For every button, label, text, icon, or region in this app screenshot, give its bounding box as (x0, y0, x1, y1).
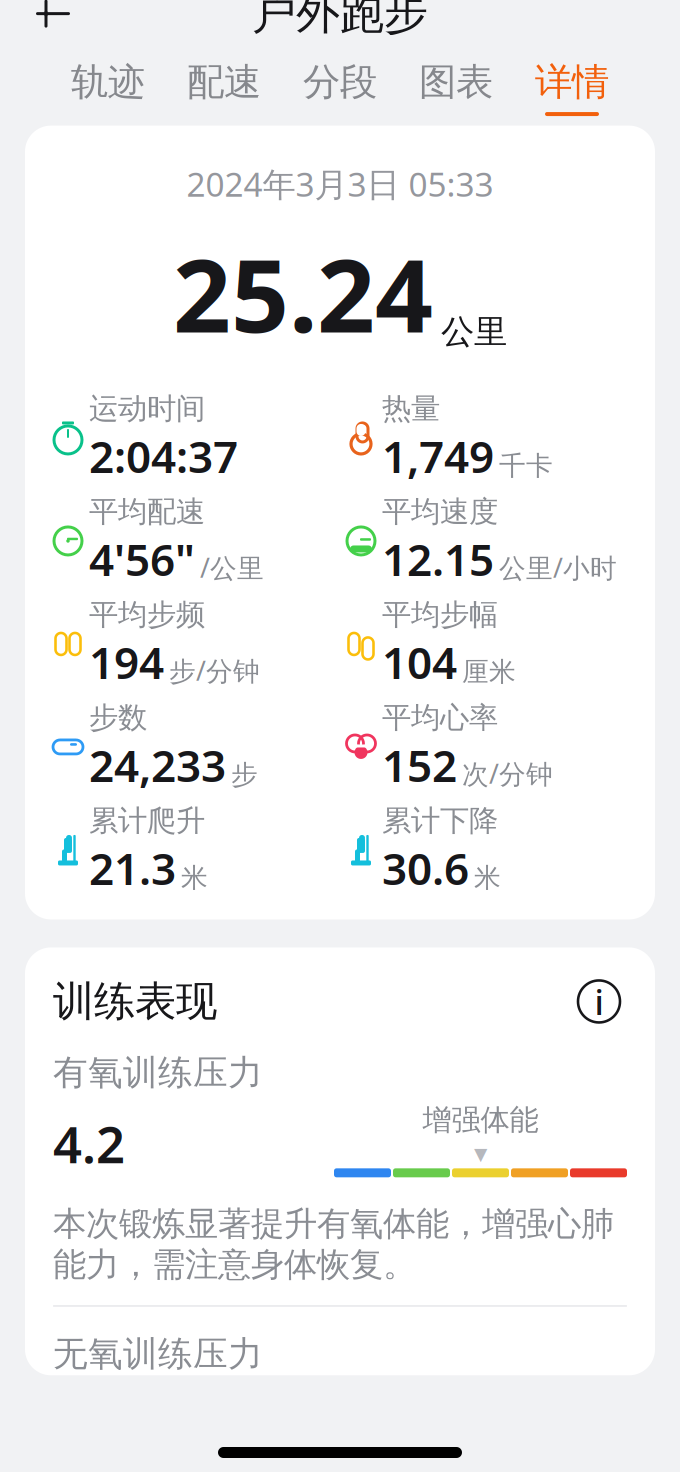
button[interactable]: 配速 (166, 53, 282, 123)
staticText: 运动时间 (89, 391, 205, 427)
button[interactable]: Info (571, 973, 627, 1029)
staticText: 累计下降 (382, 803, 498, 839)
staticText: 30.6 (382, 839, 469, 897)
staticText: 米 (181, 861, 208, 894)
staticText: 无氧训练压力 (53, 1333, 263, 1375)
staticText: 12.15 (382, 530, 494, 588)
staticText: 有氧训练压力 (53, 1051, 263, 1094)
staticText: 1,749 (382, 427, 494, 485)
staticText: 4.2 (53, 1110, 125, 1177)
staticText: 平均步幅 (382, 597, 498, 633)
staticText: 24,233 (89, 736, 226, 794)
staticText: 25.24 (173, 226, 433, 360)
staticText: ▾ (474, 1138, 487, 1168)
staticText: 公里 (441, 311, 507, 352)
staticText: 千卡 (499, 449, 553, 482)
button[interactable]: Back (20, 0, 86, 47)
staticText: 平均步频 (89, 597, 205, 633)
staticText: /公里 (200, 550, 264, 585)
button[interactable]: 轨迹 (50, 53, 166, 123)
staticText: 152 (382, 736, 457, 794)
button[interactable]: 详情 (514, 53, 630, 123)
staticText: 194 (89, 633, 164, 691)
staticText: 4'56" (89, 530, 195, 588)
staticText: 公里/小时 (499, 550, 617, 585)
staticText: 2:04:37 (89, 427, 238, 485)
staticText: 增强体能 (422, 1102, 538, 1138)
staticText: 分段 (303, 59, 377, 105)
staticText: 21.3 (89, 839, 176, 897)
staticText: 轨迹 (71, 59, 145, 105)
staticText: 104 (382, 633, 457, 691)
staticText: 平均心率 (382, 700, 498, 736)
staticText: 累计爬升 (89, 803, 205, 839)
staticText: 详情 (535, 59, 609, 105)
button[interactable]: 分段 (282, 53, 398, 123)
staticText: 热量 (382, 391, 440, 427)
staticText: 2024年3月3日 05:33 (186, 162, 493, 206)
button[interactable]: 图表 (398, 53, 514, 123)
staticText: 图表 (419, 59, 493, 105)
staticText: 训练表现 (53, 976, 217, 1027)
staticText: 步数 (89, 700, 147, 736)
staticText: 平均速度 (382, 494, 498, 530)
staticText: 次/分钟 (462, 756, 553, 791)
staticText: 户外跑步 (252, 0, 428, 41)
staticText: 步 (231, 758, 258, 791)
staticText: 本次锻炼显著提升有氧体能，增强心肺能力，需注意身体恢复。 (53, 1203, 614, 1285)
staticText: 米 (474, 861, 501, 894)
staticText: 配速 (187, 59, 261, 105)
staticText: i (594, 978, 603, 1024)
staticText: 平均配速 (89, 494, 205, 530)
staticText: 厘米 (462, 655, 516, 688)
staticText: 步/分钟 (169, 653, 260, 688)
